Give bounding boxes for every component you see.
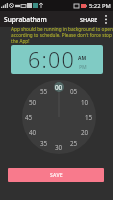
staticText: 20 — [81, 128, 89, 137]
staticText: the App! — [11, 38, 30, 44]
staticText: 15 — [85, 113, 93, 122]
staticText: 6:00 — [28, 45, 75, 74]
staticText: 5:22 PM — [89, 2, 111, 10]
staticText: SHARE — [80, 16, 98, 23]
staticText: 05 — [70, 87, 78, 96]
staticText: App should be running in background to o… — [11, 26, 113, 32]
staticText: 50 — [29, 98, 37, 107]
staticText: according to schedule. Please don't forc… — [11, 32, 112, 38]
button[interactable]: SHARE — [78, 13, 100, 26]
staticText: 10 — [81, 98, 89, 107]
staticText: 45 — [25, 113, 33, 122]
staticText: 55 — [40, 87, 48, 96]
staticText: 25 — [70, 139, 78, 148]
staticText: Suprabatham — [4, 15, 47, 24]
staticText: SAVE — [50, 172, 63, 179]
staticText: 30 — [55, 143, 63, 152]
button[interactable]: More options — [102, 12, 110, 26]
button[interactable]: 6:00 — [11, 45, 103, 74]
staticText: 00 — [55, 83, 63, 92]
staticText: 35 — [40, 139, 48, 148]
staticText: AM — [78, 55, 87, 62]
button[interactable]: SAVE — [8, 168, 104, 182]
staticText: 40 — [29, 128, 37, 137]
staticText: PM — [79, 64, 87, 71]
